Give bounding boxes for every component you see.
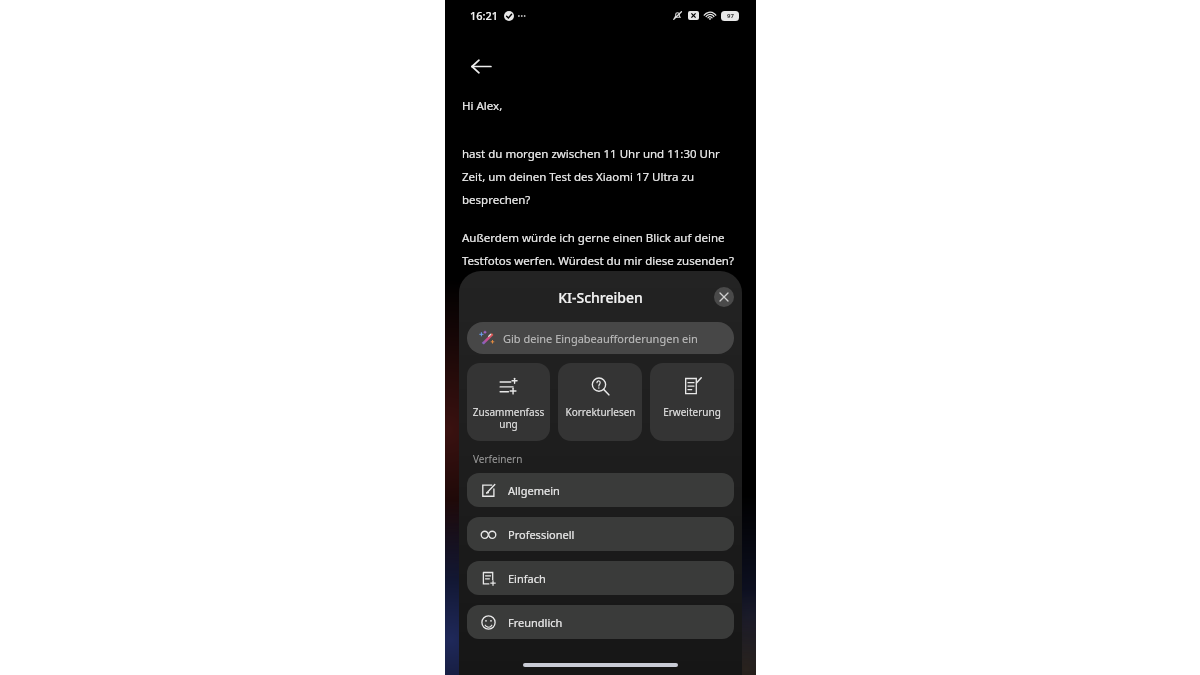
staticText: Professionell	[508, 527, 575, 542]
staticText: 16:21	[470, 8, 499, 23]
staticText: 97	[727, 12, 734, 20]
staticText: Freundlich	[508, 615, 563, 630]
staticText: hast du morgen zwischen 11 Uhr und 11:30…	[462, 146, 739, 207]
button[interactable]: Professionell	[467, 517, 734, 551]
button[interactable]: Zusammenfassung	[467, 363, 550, 441]
staticText: Zusammenfassung	[471, 405, 546, 431]
button[interactable]: Erweiterung	[650, 363, 734, 441]
staticText: Verfeinern	[473, 452, 523, 466]
button[interactable]: Gib deine Eingabeaufforderungen ein	[467, 322, 734, 354]
staticText: Außerdem würde ich gerne einen Blick auf…	[462, 230, 739, 268]
button[interactable]: Korrekturlesen	[558, 363, 642, 441]
staticText: Einfach	[508, 571, 546, 586]
staticText: Allgemein	[508, 483, 560, 498]
button[interactable]: Freundlich	[467, 605, 734, 639]
staticText: Erweiterung	[663, 405, 721, 419]
button[interactable]: Allgemein	[467, 473, 734, 507]
button[interactable]: Back	[459, 44, 503, 88]
button[interactable]: Einfach	[467, 561, 734, 595]
button[interactable]: Close	[714, 287, 734, 307]
staticText: Korrekturlesen	[565, 405, 636, 419]
staticText: Gib deine Eingabeaufforderungen ein	[503, 331, 698, 346]
staticText: KI-Schreiben	[558, 288, 643, 307]
staticText: Hi Alex,	[462, 98, 503, 114]
